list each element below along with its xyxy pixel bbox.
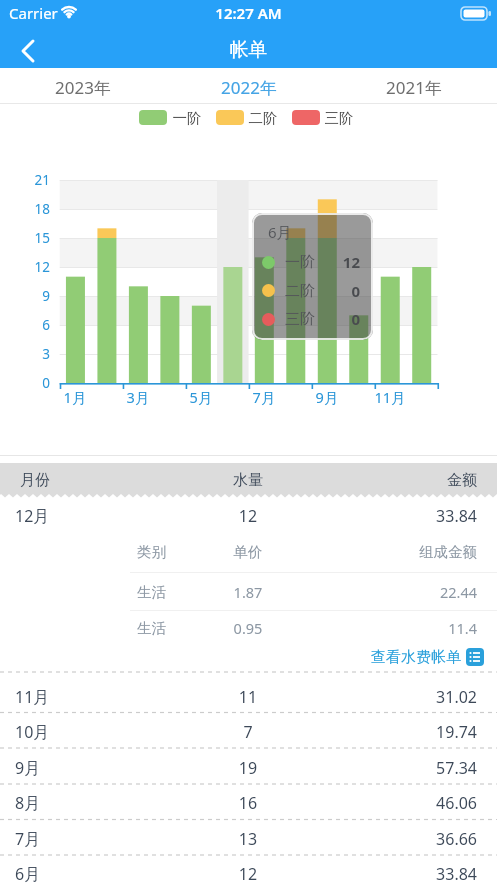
button[interactable] [0,786,497,821]
staticText: 18 [8,200,50,218]
staticText: 12 [208,863,288,883]
staticText: 0 [8,374,50,392]
staticText: 帐单 [0,38,497,62]
staticText: 6月 [15,863,95,883]
staticText: 7月 [242,387,286,407]
staticText: 7月 [15,828,95,850]
staticText: 生活 [137,619,197,637]
staticText: 二阶 [285,282,325,301]
staticText: 31.02 [377,686,477,708]
button[interactable] [0,857,497,883]
staticText: 22.44 [377,582,477,602]
staticText: 11 [208,686,288,708]
staticText: 19 [208,757,288,779]
staticText: 组成金额 [377,543,477,561]
button[interactable]: 2021年 [331,72,497,102]
button[interactable] [292,110,354,126]
staticText: 金额 [397,471,477,490]
staticText: 11月 [15,686,95,708]
staticText: 33.84 [377,863,477,883]
staticText: 12月 [15,505,95,527]
staticText: 查看水费帐单 [355,648,461,667]
staticText: 三阶 [322,109,356,127]
staticText: 16 [208,792,288,814]
staticText: 11月 [368,387,412,407]
staticText: 12 [208,505,288,527]
staticText: 19.74 [377,721,477,743]
staticText: 21 [8,171,50,189]
staticText: Carrier [9,3,79,23]
staticText: 单价 [208,543,288,561]
staticText: 一阶 [170,109,204,127]
staticText: 33.84 [377,505,477,527]
button[interactable]: 2022年 [166,72,332,102]
staticText: 9月 [15,757,95,779]
staticText: 57.34 [377,757,477,779]
staticText: 6 [8,316,50,334]
staticText: 3 [8,345,50,363]
staticText: 9月 [305,387,349,407]
staticText: 5月 [179,387,223,407]
staticText: 7 [208,721,288,743]
staticText: 8月 [15,792,95,814]
staticText: 0 [312,309,360,329]
staticText: 二阶 [246,109,280,127]
staticText: 生活 [137,583,197,601]
staticText: 15 [8,229,50,247]
staticText: 13 [208,828,288,850]
staticText: 1月 [53,387,97,407]
staticText: 3月 [116,387,160,407]
staticText: 2021年 [331,76,497,99]
staticText: 12 [312,252,360,272]
button[interactable]: 2023年 [0,72,166,102]
staticText: 月份 [20,471,100,490]
button[interactable] [350,645,490,669]
button[interactable] [0,500,497,532]
staticText: 类别 [137,543,197,561]
button[interactable] [0,679,497,714]
staticText: 2023年 [0,76,166,99]
staticText: 三阶 [285,310,325,329]
staticText: 一阶 [285,253,325,272]
staticText: 0 [312,281,360,301]
button[interactable] [0,821,497,856]
staticText: 10月 [15,721,95,743]
staticText: 2022年 [166,76,332,99]
staticText: 12:27 AM [0,3,497,23]
staticText: 11.4 [377,618,477,638]
staticText: 36.66 [377,828,477,850]
staticText: 46.06 [377,792,477,814]
staticText: 6月 [268,222,328,242]
staticText: 9 [8,287,50,305]
button[interactable] [0,715,497,750]
button[interactable] [139,110,201,126]
staticText: 0.95 [208,618,288,638]
staticText: 12 [8,258,50,276]
staticText: 水量 [208,471,288,490]
staticText: 1.87 [208,582,288,602]
button[interactable] [0,750,497,785]
button[interactable] [216,110,278,126]
button[interactable] [10,36,46,66]
